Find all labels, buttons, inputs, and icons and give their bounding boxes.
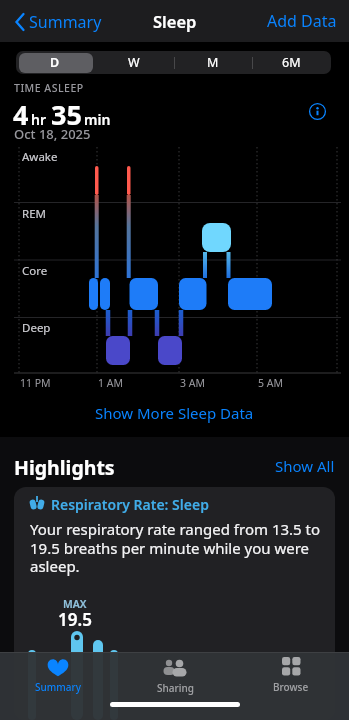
button[interactable]: D (16, 51, 94, 74)
staticText: 3 AM (180, 376, 205, 390)
staticText: Sleep (153, 10, 197, 32)
staticText: min (84, 110, 111, 129)
button[interactable]: Summary (25, 657, 91, 703)
staticText: TIME ASLEEP (14, 81, 84, 95)
button[interactable]: Show More Sleep Data (0, 400, 349, 426)
staticText: W (128, 54, 140, 71)
staticText: D (50, 54, 60, 71)
staticText: REM (22, 206, 46, 222)
staticText: 4 (13, 96, 29, 133)
staticText: Core (22, 263, 48, 279)
staticText: Highlights (14, 454, 115, 481)
button[interactable]: W (94, 51, 173, 74)
staticText: M (207, 54, 219, 71)
button[interactable]: 6M (252, 51, 331, 74)
staticText: Respiratory Rate: Sleep (51, 495, 209, 514)
button[interactable]: Add Data (267, 0, 337, 42)
staticText: hr (31, 110, 47, 129)
staticText: Summary (35, 680, 81, 694)
staticText: 35 (51, 96, 82, 133)
staticText: MAX (63, 597, 87, 611)
staticText: 6M (282, 54, 301, 71)
button[interactable] (309, 103, 326, 120)
staticText: Your respiratory rate ranged from 13.5 t… (30, 519, 326, 576)
staticText: Show More Sleep Data (95, 403, 254, 423)
button[interactable]: Respiratory Rate: Sleep (14, 487, 335, 720)
staticText: Browse (273, 680, 309, 694)
staticText: 1 AM (98, 376, 123, 390)
button[interactable]: Browse (258, 657, 324, 703)
staticText: 5 AM (258, 376, 283, 390)
staticText: Deep (22, 320, 51, 336)
staticText: Oct 18, 2025 (14, 125, 91, 143)
staticText: Add Data (267, 10, 337, 32)
button[interactable]: Show All (275, 456, 335, 476)
staticText: Show All (275, 456, 335, 476)
staticText: 11 PM (20, 376, 51, 390)
button[interactable]: Summary (14, 8, 102, 36)
staticText: Summary (29, 11, 102, 33)
staticText: Sharing (157, 681, 194, 695)
button[interactable]: M (173, 51, 252, 74)
staticText: 19.5 (58, 608, 92, 631)
staticText: Awake (22, 149, 58, 165)
button[interactable]: Sharing (142, 657, 208, 703)
